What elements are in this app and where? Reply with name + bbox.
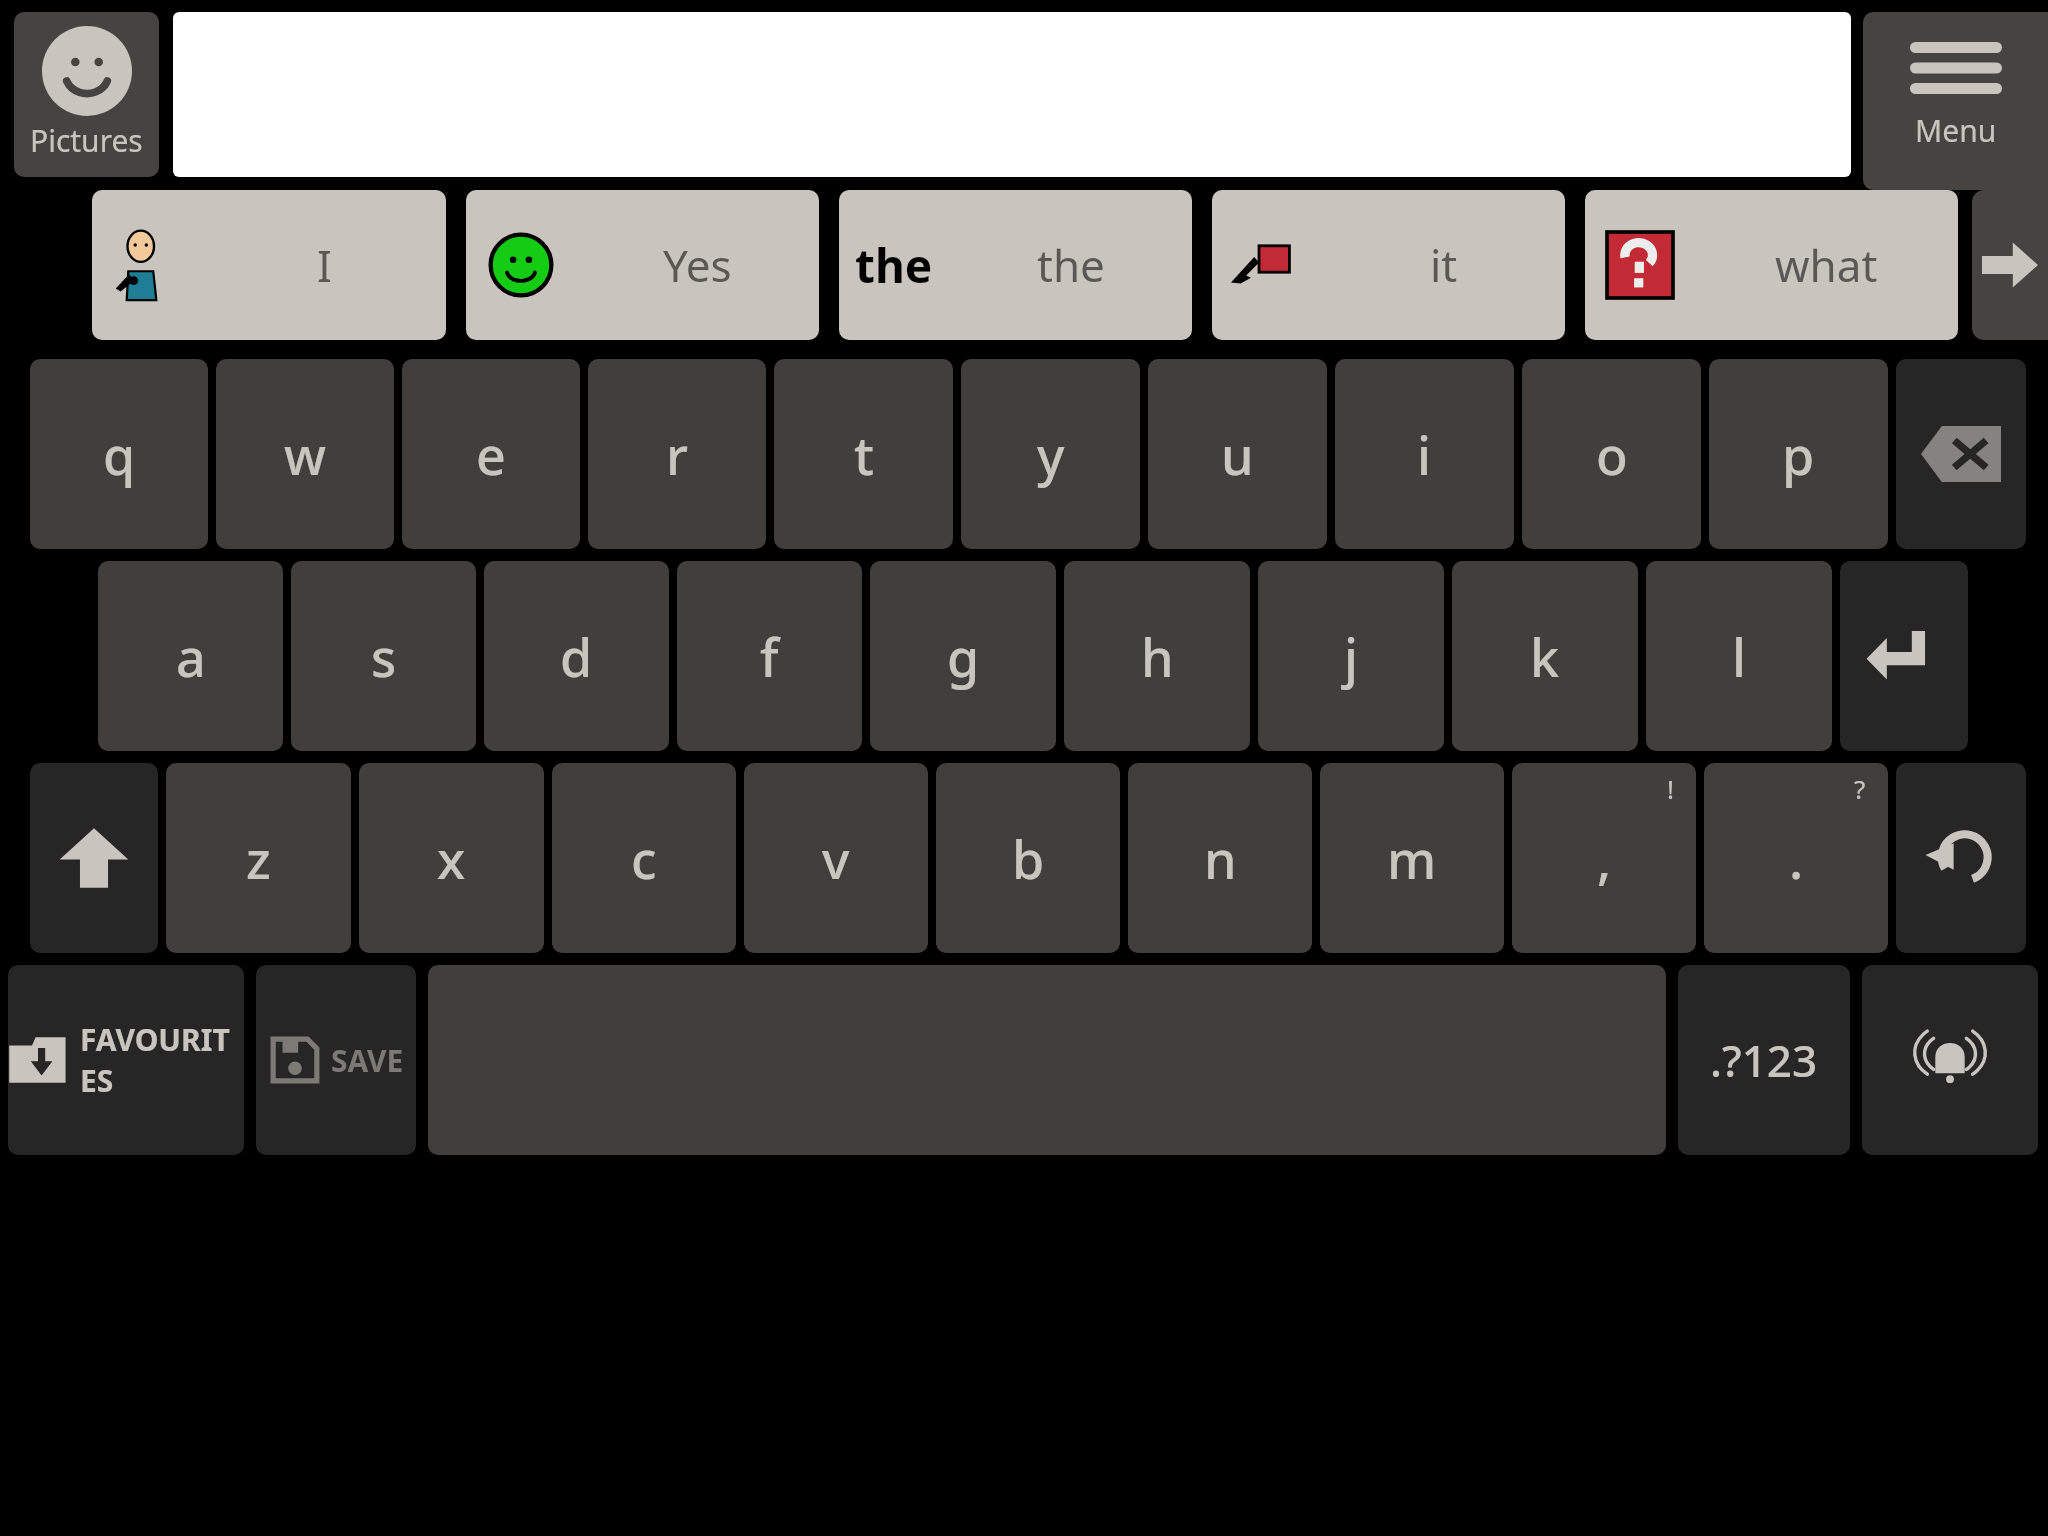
staticText: h [1141, 621, 1174, 692]
button[interactable]: FAVOURITES [8, 965, 244, 1155]
button[interactable]: e [402, 359, 580, 549]
button[interactable]: s [291, 561, 476, 751]
button[interactable]: w [216, 359, 394, 549]
button[interactable]: a [98, 561, 283, 751]
staticText: n [1204, 823, 1237, 894]
button[interactable]: .?123 [1678, 965, 1850, 1155]
button[interactable]: Backspace [1896, 359, 2026, 549]
button[interactable]: k [1452, 561, 1638, 751]
button[interactable]: r [588, 359, 766, 549]
button[interactable]: g [870, 561, 1056, 751]
staticText: d [560, 621, 593, 692]
staticText: it [1430, 235, 1458, 295]
staticText: g [947, 621, 980, 692]
staticText: the [855, 234, 933, 297]
staticText: Pictures [30, 120, 143, 161]
staticText: w [284, 419, 326, 490]
button[interactable]: u [1148, 359, 1327, 549]
button[interactable]: j [1258, 561, 1444, 751]
button[interactable]: f [677, 561, 862, 751]
staticText: z [246, 823, 271, 894]
staticText: t [854, 419, 874, 490]
staticText: FAVOURITES [80, 1019, 244, 1101]
staticText: x [437, 823, 466, 894]
staticText: r [666, 419, 688, 490]
staticText: b [1012, 823, 1045, 894]
staticText: l [1732, 621, 1747, 692]
staticText: . [1789, 823, 1804, 894]
staticText: q [103, 419, 136, 490]
staticText: , [1597, 823, 1612, 894]
staticText: k [1530, 621, 1560, 692]
staticText: .?123 [1710, 1030, 1818, 1090]
staticText: I [317, 235, 332, 295]
button[interactable]: SAVE [256, 965, 416, 1155]
staticText: i [1417, 419, 1432, 490]
button[interactable]: Menu [1863, 12, 2048, 190]
staticText: c [631, 823, 657, 894]
staticText: ? [1854, 771, 1866, 806]
button[interactable]: the [839, 190, 1192, 340]
button[interactable]: y [961, 359, 1140, 549]
button[interactable]: b [936, 763, 1120, 953]
button[interactable]: Speak [1862, 965, 2038, 1155]
staticText: SAVE [331, 1040, 404, 1081]
staticText: u [1221, 419, 1254, 490]
button[interactable]: Yes [466, 190, 819, 340]
button[interactable]: m [1320, 763, 1504, 953]
staticText: v [822, 823, 850, 894]
button[interactable]: More predictions [1972, 190, 2048, 340]
staticText: a [176, 621, 206, 692]
staticText: y [1037, 419, 1065, 490]
staticText: Yes [663, 235, 732, 295]
staticText: f [760, 621, 779, 692]
button[interactable]: z [166, 763, 351, 953]
button[interactable]: d [484, 561, 669, 751]
button[interactable]: Pictures [14, 12, 159, 177]
staticText: e [476, 419, 506, 490]
staticText: the [1037, 235, 1105, 295]
button[interactable]: c [552, 763, 736, 953]
staticText: o [1596, 419, 1628, 490]
button[interactable]: I [92, 190, 446, 340]
button[interactable]: q [30, 359, 208, 549]
staticText: p [1782, 419, 1815, 490]
staticText: j [1344, 621, 1359, 692]
button[interactable]: . [1704, 763, 1888, 953]
button[interactable]: p [1709, 359, 1888, 549]
button[interactable]: Undo [1896, 763, 2026, 953]
staticText: what [1775, 235, 1878, 295]
staticText: Menu [1915, 110, 1997, 151]
button[interactable]: it [1212, 190, 1565, 340]
staticText: s [371, 621, 397, 692]
button[interactable]: h [1064, 561, 1250, 751]
button[interactable]: x [359, 763, 544, 953]
button[interactable]: Shift [30, 763, 158, 953]
button[interactable]: what [1585, 190, 1958, 340]
button[interactable]: l [1646, 561, 1832, 751]
button[interactable]: , [1512, 763, 1696, 953]
button[interactable]: o [1522, 359, 1701, 549]
button[interactable]: v [744, 763, 928, 953]
staticText: m [1387, 823, 1437, 894]
button[interactable]: i [1335, 359, 1514, 549]
button[interactable]: n [1128, 763, 1312, 953]
staticText: ! [1667, 771, 1674, 806]
button[interactable]: Enter [1840, 561, 1968, 751]
button[interactable]: t [774, 359, 953, 549]
